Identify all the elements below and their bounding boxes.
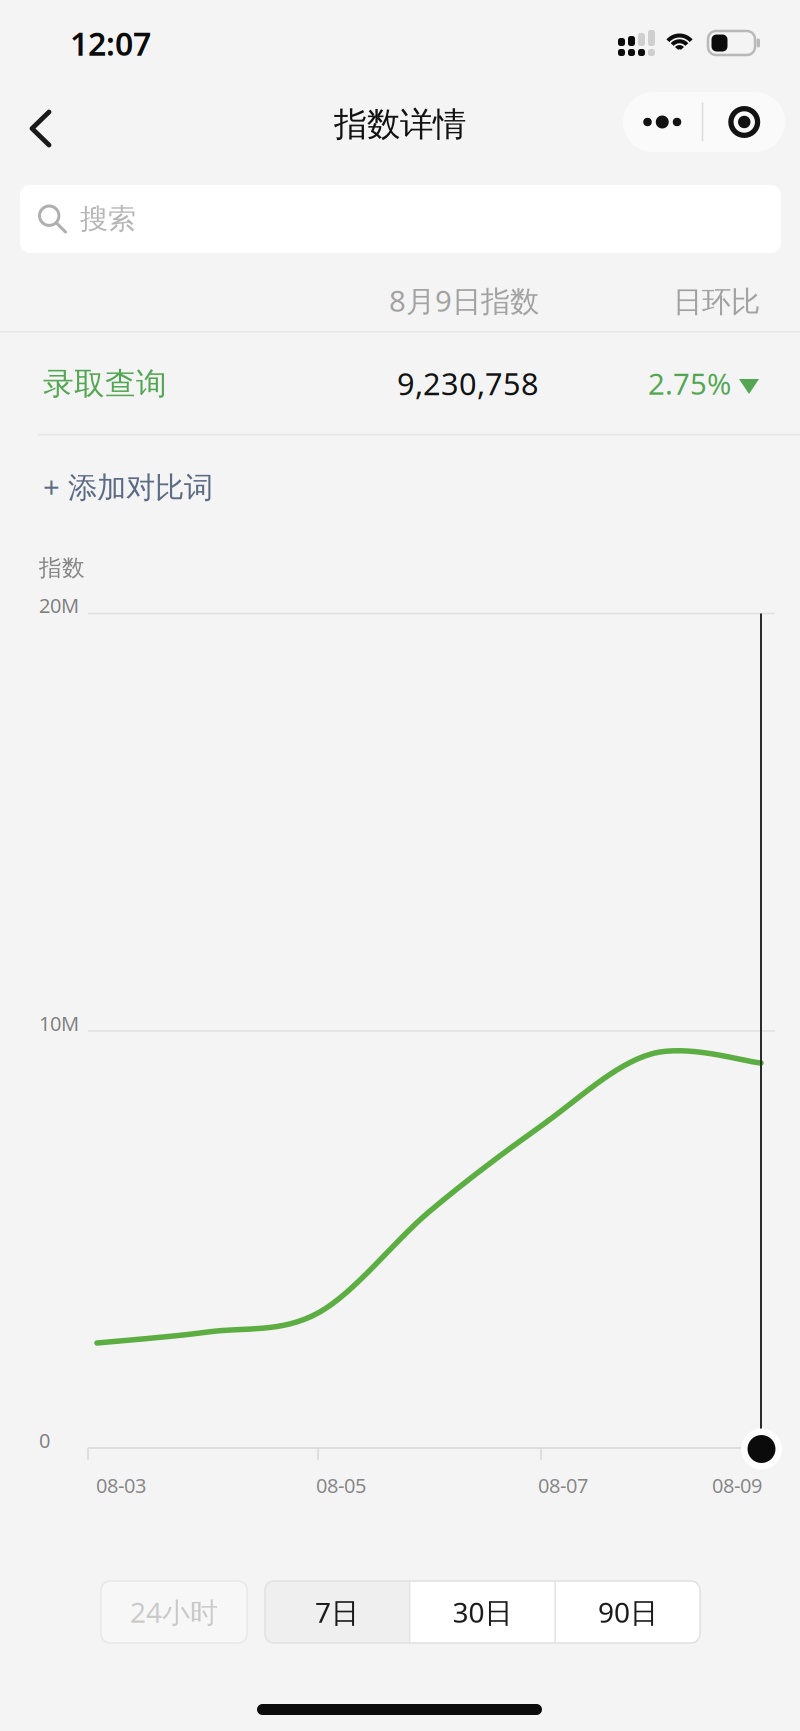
button[interactable]: 7日 — [265, 1581, 409, 1643]
staticText: 搜索 — [80, 202, 136, 236]
staticText: 20M — [39, 592, 79, 619]
staticText: 24小时 — [130, 1593, 218, 1631]
staticText: 指数详情 — [334, 104, 466, 145]
staticText: 指数 — [39, 554, 85, 582]
staticText: 08-09 — [712, 1472, 762, 1499]
button[interactable]: 搜索 — [20, 185, 781, 253]
staticText: 10M — [39, 1010, 79, 1037]
staticText: 90日 — [598, 1593, 658, 1631]
button[interactable]: 90日 — [556, 1581, 700, 1643]
button[interactable]: + 添加对比词 — [0, 445, 253, 528]
staticText: 录取查询 — [43, 365, 167, 403]
staticText: 08-03 — [96, 1472, 146, 1499]
staticText: 9,230,758 — [397, 363, 539, 404]
staticText: 12:07 — [70, 22, 151, 64]
button[interactable]: Back — [8, 94, 77, 163]
button[interactable]: 30日 — [410, 1581, 554, 1643]
staticText: 日环比 — [673, 284, 760, 320]
staticText: 2.75% — [648, 364, 731, 403]
staticText: 08-07 — [538, 1472, 588, 1499]
staticText: 7日 — [315, 1593, 359, 1631]
staticText: 8月9日指数 — [389, 281, 539, 320]
staticText: 0 — [39, 1427, 50, 1454]
button[interactable]: More options — [623, 92, 702, 152]
button[interactable]: 24小时 — [101, 1581, 247, 1643]
button[interactable]: Close mini program — [703, 92, 785, 152]
staticText: 30日 — [452, 1593, 512, 1631]
staticText: 08-05 — [316, 1472, 366, 1499]
staticText: + 添加对比词 — [43, 467, 213, 506]
